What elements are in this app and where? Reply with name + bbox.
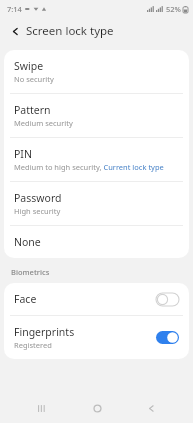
button[interactable]: Toggle on (156, 331, 179, 344)
staticText: Biometrics (11, 267, 50, 277)
button[interactable]: Password (4, 182, 189, 225)
staticText: Screen lock type (26, 23, 114, 39)
staticText: Fingerprints (14, 325, 75, 339)
button[interactable]: Pattern (4, 94, 189, 137)
staticText: Pattern (14, 103, 51, 117)
staticText: No security (14, 74, 54, 84)
staticText: Password (14, 191, 62, 205)
staticText: 7:14 (7, 4, 22, 14)
button[interactable]: Toggle off (156, 293, 179, 306)
staticText: Medium security (14, 118, 73, 128)
staticText: High security (14, 206, 61, 216)
button[interactable]: Back (7, 23, 23, 39)
staticText: Registered (14, 340, 52, 350)
button[interactable]: Swipe (4, 50, 189, 93)
button[interactable]: Home (84, 395, 110, 421)
staticText: PIN (14, 147, 32, 161)
staticText: Swipe (14, 59, 44, 73)
button[interactable]: Fingerprints (4, 316, 189, 359)
staticText: 52% (166, 4, 181, 14)
button[interactable]: None (4, 226, 189, 258)
staticText: Face (14, 292, 37, 306)
staticText: None (14, 235, 41, 249)
button[interactable]: Back (138, 395, 164, 421)
button[interactable]: Recent apps (29, 395, 55, 421)
button[interactable]: PIN (4, 138, 189, 181)
button[interactable]: Face (4, 283, 189, 315)
staticText: Medium to high security, Current lock ty… (14, 162, 164, 172)
